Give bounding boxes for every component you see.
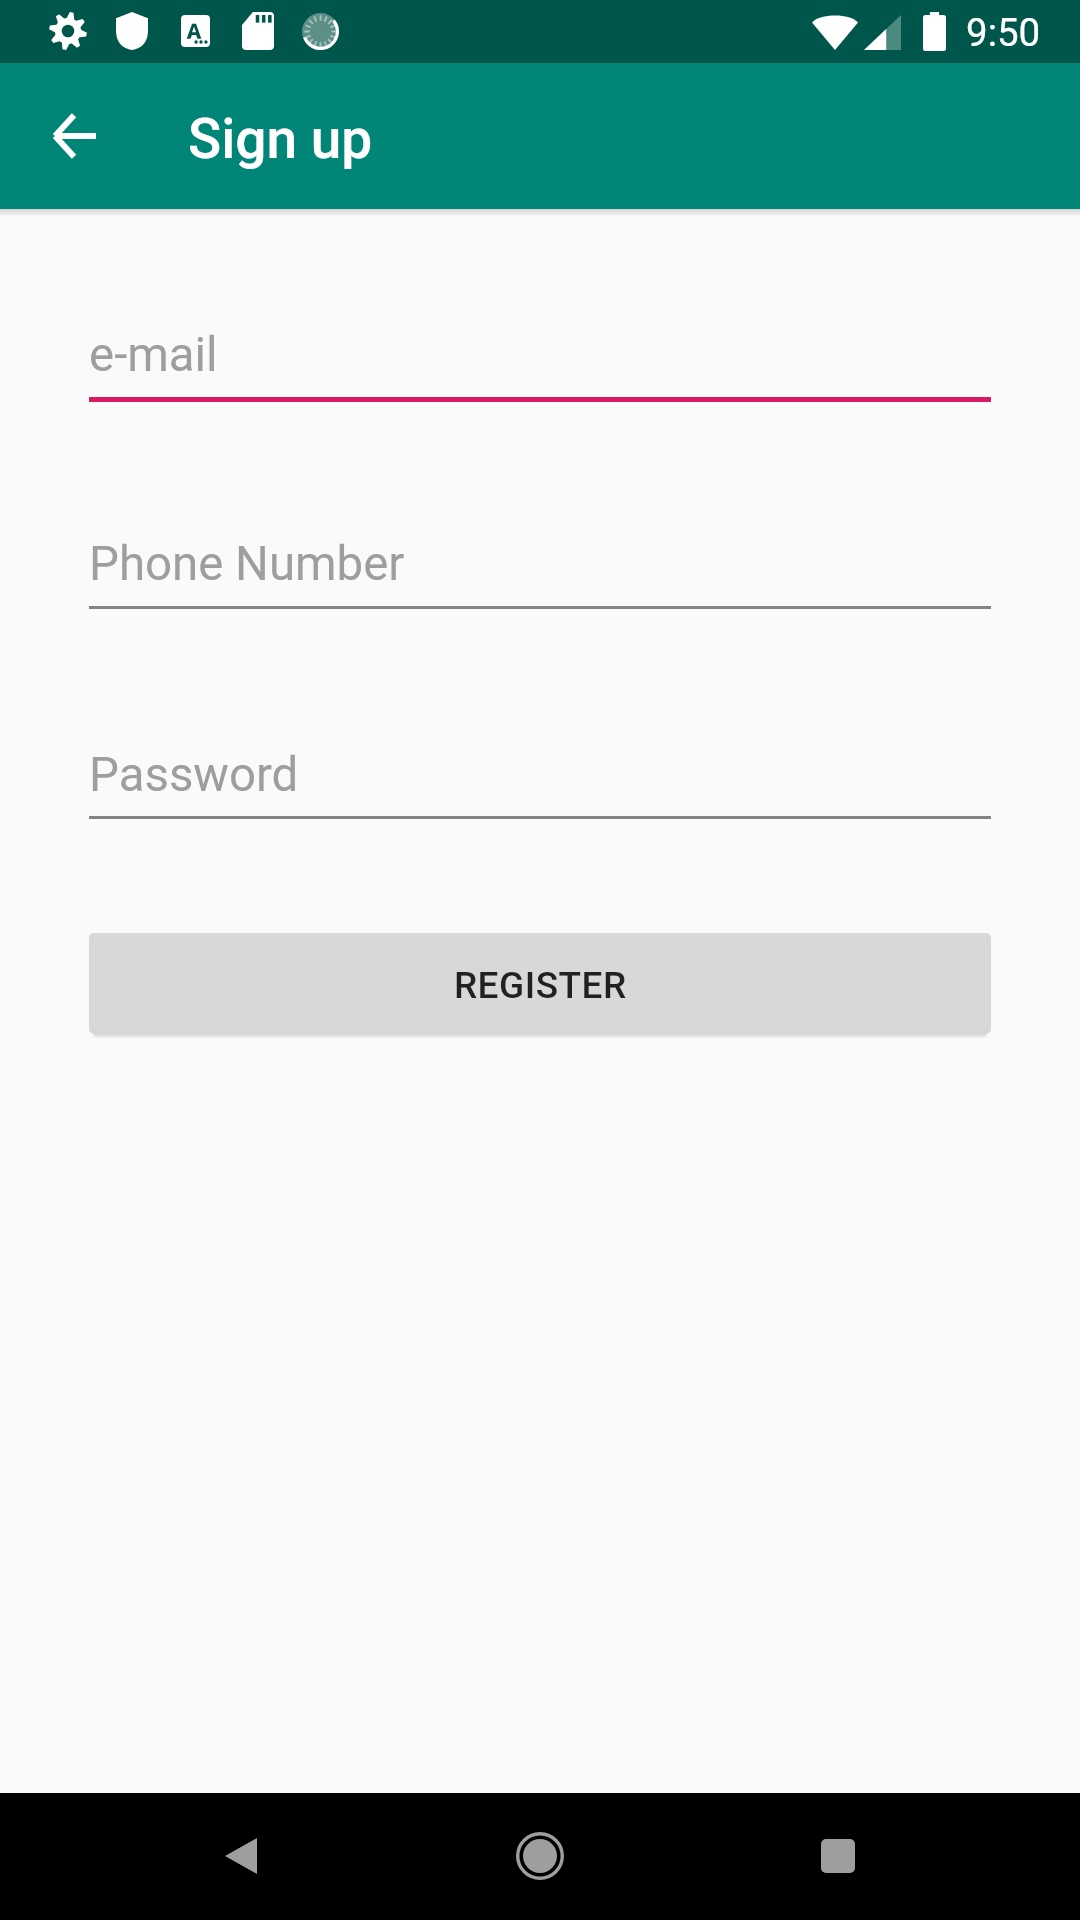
staticText: Password — [89, 747, 299, 803]
staticText: 9:50 — [966, 10, 1041, 55]
button[interactable]: Phone Number — [89, 512, 991, 609]
button[interactable]: e-mail — [89, 303, 991, 402]
staticText: REGISTER — [454, 964, 627, 1007]
staticText: Phone Number — [89, 536, 405, 592]
button[interactable]: Back — [26, 88, 122, 184]
staticText: Sign up — [188, 107, 373, 171]
button[interactable]: Password — [89, 723, 991, 819]
button[interactable]: Recents — [775, 1793, 901, 1919]
staticText: e-mail — [89, 327, 218, 383]
button[interactable]: Home — [477, 1793, 603, 1919]
button[interactable]: Back — [178, 1793, 304, 1919]
button[interactable]: REGISTER — [89, 933, 991, 1034]
